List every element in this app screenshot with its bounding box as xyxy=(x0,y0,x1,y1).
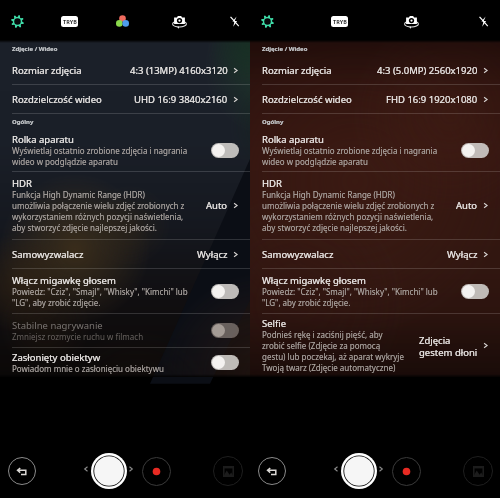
staticText: Zdjęcie / Wideo xyxy=(262,45,308,53)
button[interactable]: Flash off xyxy=(469,7,497,35)
button[interactable]: HDR xyxy=(0,172,250,239)
button[interactable]: Shutter xyxy=(341,453,377,489)
staticText: Auto xyxy=(206,199,228,212)
staticText: Zasłonięty obiektyw xyxy=(12,351,101,364)
button[interactable]: Rozdzielczość wideo xyxy=(0,85,250,113)
button[interactable]: Mode xyxy=(325,7,353,35)
staticText: Samowyzwalacz xyxy=(12,248,197,261)
button[interactable]: Back xyxy=(258,457,286,485)
button[interactable]: Toggle xyxy=(211,284,239,299)
staticText: Rolka aparatu xyxy=(262,133,324,146)
button[interactable]: Samowyzwalacz xyxy=(250,240,500,268)
staticText: Samowyzwalacz xyxy=(262,248,447,261)
button[interactable]: Switch camera xyxy=(397,7,425,35)
button[interactable]: Flash off xyxy=(220,7,248,35)
button[interactable]: Switch camera xyxy=(165,7,193,35)
button[interactable]: Stabilne nagrywanie xyxy=(0,314,250,347)
staticText: Rolka aparatu xyxy=(12,133,74,146)
button[interactable]: Settings xyxy=(3,7,31,35)
button[interactable]: Toggle xyxy=(211,323,239,338)
staticText: Rozmiar zdjęcia xyxy=(262,64,377,77)
button[interactable]: Toggle xyxy=(211,355,239,370)
button[interactable]: Rozmiar zdjęcia xyxy=(250,56,500,84)
staticText: Podnieś rękę i zaciśnij pięść, aby zrobi… xyxy=(262,329,404,373)
staticText: Wyłącz xyxy=(447,248,478,261)
staticText: Ogólny xyxy=(262,118,284,126)
staticText: Wyświetlaj ostatnio zrobione zdjęcia i n… xyxy=(12,145,188,167)
staticText: Powiedz: "Cziz", "Smajl", "Whisky", "Kim… xyxy=(12,286,188,308)
button[interactable]: Selfie xyxy=(250,314,500,377)
staticText: Stabilne nagrywanie xyxy=(12,319,103,332)
staticText: TRYB xyxy=(63,18,77,25)
staticText: HDR xyxy=(12,177,32,190)
button[interactable]: Settings xyxy=(253,7,281,35)
button[interactable]: Rolka aparatu xyxy=(0,129,250,171)
button[interactable]: Włącz migawkę głosem xyxy=(250,269,500,313)
staticText: Powiedz: "Cziz", "Smajl", "Whisky", "Kim… xyxy=(262,286,438,308)
button[interactable]: Back xyxy=(8,457,36,485)
button[interactable]: Toggle xyxy=(211,143,239,158)
staticText: Powiadom mnie o zasłonięciu obiektywu xyxy=(12,363,164,374)
staticText: HDR xyxy=(262,177,282,190)
staticText: FHD 16:9 1920x1080 xyxy=(386,93,478,106)
staticText: Rozdzielczość wideo xyxy=(12,93,134,106)
button[interactable]: Rolka aparatu xyxy=(250,129,500,171)
button[interactable]: Toggle xyxy=(461,284,489,299)
button[interactable]: Rozmiar zdjęcia xyxy=(0,56,250,84)
staticText: Rozmiar zdjęcia xyxy=(12,64,130,77)
staticText: Zmniejsz rozmycie ruchu w filmach xyxy=(12,331,144,342)
staticText: Funkcja High Dynamic Range (HDR) umożliw… xyxy=(12,189,185,233)
staticText: Auto xyxy=(456,199,478,212)
button[interactable]: Samowyzwalacz xyxy=(0,240,250,268)
staticText: Włącz migawkę głosem xyxy=(262,274,366,287)
button[interactable]: Zasłonięty obiektyw xyxy=(0,348,250,377)
button[interactable]: Record xyxy=(142,457,171,486)
staticText: Rozdzielczość wideo xyxy=(262,93,386,106)
staticText: Selfie xyxy=(262,317,287,330)
staticText: 4:3 (13MP) 4160x3120 xyxy=(130,64,228,77)
staticText: UHD 16:9 3840x2160 xyxy=(134,93,228,106)
staticText: Ogólny xyxy=(12,118,34,126)
button[interactable]: Mode xyxy=(55,7,83,35)
button[interactable]: Rozdzielczość wideo xyxy=(250,85,500,113)
staticText: 4:3 (5.0MP) 2560x1920 xyxy=(377,64,478,77)
staticText: Wyświetlaj ostatnio zrobione zdjęcia i n… xyxy=(262,145,438,167)
button[interactable]: Filters xyxy=(108,7,136,35)
staticText: Funkcja High Dynamic Range (HDR) umożliw… xyxy=(262,189,435,233)
staticText: TRYB xyxy=(333,18,347,25)
staticText: Zdjęcie / Wideo xyxy=(12,45,58,53)
button[interactable]: Record xyxy=(392,457,421,486)
button[interactable]: Toggle xyxy=(461,143,489,158)
button[interactable]: Shutter xyxy=(91,453,127,489)
button[interactable]: Gallery xyxy=(463,456,493,486)
button[interactable]: HDR xyxy=(250,172,500,239)
staticText: Zdjęcia gestem dłoni xyxy=(419,334,478,358)
button[interactable]: Gallery xyxy=(213,456,243,486)
staticText: Włącz migawkę głosem xyxy=(12,274,116,287)
button[interactable]: Włącz migawkę głosem xyxy=(0,269,250,313)
staticText: Wyłącz xyxy=(197,248,228,261)
